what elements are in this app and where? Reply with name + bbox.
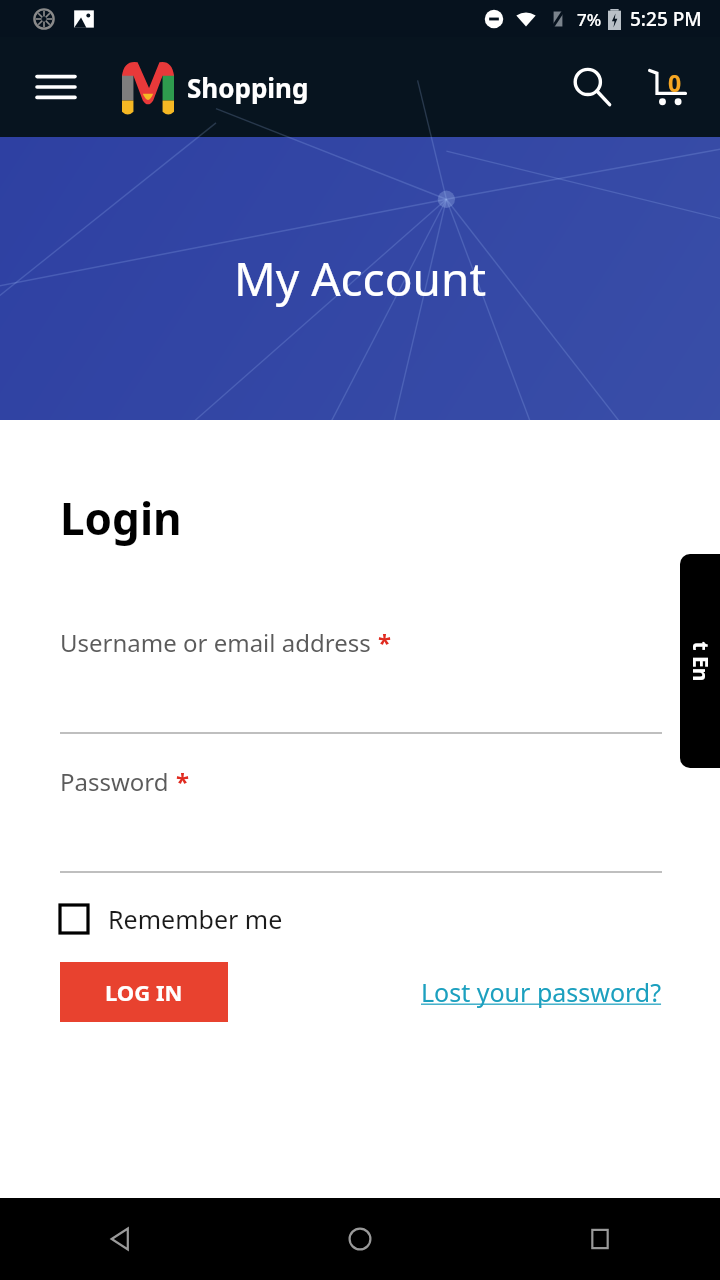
staticText: Username or email address	[60, 626, 371, 659]
staticText: 7%	[577, 8, 602, 31]
button[interactable]: Cart, 0 items	[642, 61, 694, 113]
button[interactable]: Search	[566, 61, 618, 113]
button[interactable]: Back	[0, 1198, 240, 1280]
staticText: 0	[668, 67, 682, 98]
staticText: Password	[60, 765, 169, 798]
staticText: Product Enquiry	[680, 641, 720, 681]
button[interactable]: Recent apps	[480, 1198, 720, 1280]
staticText: 5:25 PM	[630, 6, 702, 32]
button[interactable]: LOG IN	[60, 962, 228, 1022]
staticText: *	[176, 765, 190, 798]
staticText: Remember me	[108, 902, 283, 936]
button[interactable]: Product Enquiry	[680, 554, 720, 768]
staticText: LOG IN	[105, 977, 183, 1007]
staticText: My Account	[234, 247, 486, 310]
staticText: Lost your password?	[421, 975, 662, 1009]
staticText: Login	[60, 488, 182, 548]
staticText: Shopping	[187, 70, 309, 105]
button[interactable]: Menu	[34, 65, 78, 109]
button[interactable]: Home	[240, 1198, 480, 1280]
button[interactable]: Remember me	[60, 902, 283, 936]
staticText: *	[378, 626, 392, 659]
button[interactable]: Lost your password?	[421, 975, 662, 1009]
